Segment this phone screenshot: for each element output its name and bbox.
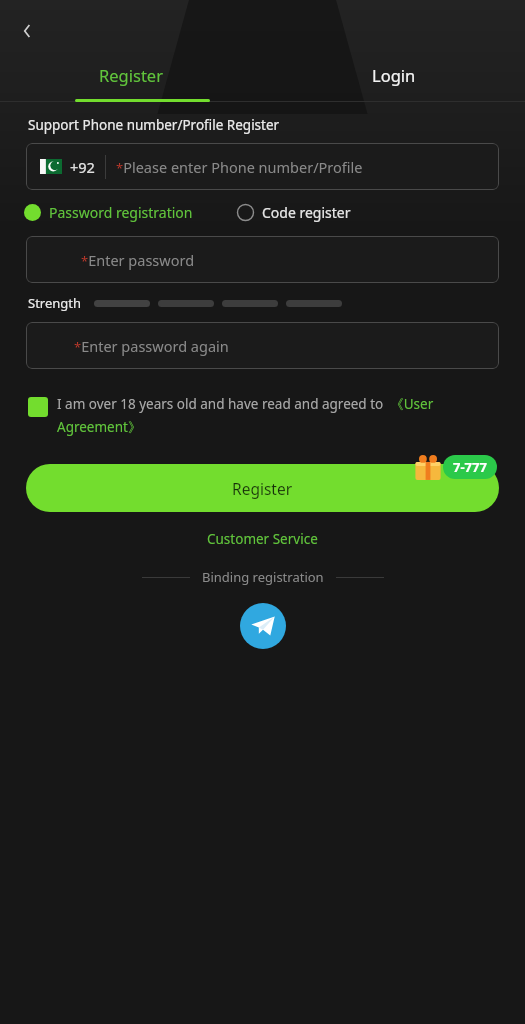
button[interactable]: Login — [262, 52, 525, 98]
button[interactable]: +92 — [26, 143, 499, 190]
staticText: Support Phone number/Profile Register — [28, 116, 280, 134]
staticText: Register — [232, 478, 293, 499]
button[interactable]: Back — [6, 10, 48, 52]
button[interactable]: Customer Service — [203, 526, 322, 552]
button[interactable]: Password registration — [24, 203, 193, 222]
button[interactable]: *Enter password again — [26, 322, 499, 369]
button[interactable]: Telegram — [240, 603, 286, 649]
staticText: Code register — [262, 203, 351, 222]
button[interactable]: Register — [0, 52, 262, 98]
staticText: Binding registration — [202, 568, 324, 586]
button[interactable]: *Enter password — [26, 236, 499, 283]
staticText: *Enter password again — [74, 336, 229, 356]
staticText: 7-777 — [453, 458, 487, 476]
button[interactable]: I am over 18 years old and have read and… — [28, 395, 465, 436]
staticText: Strength — [28, 294, 82, 312]
staticText: *Please enter Phone number/Profile — [116, 157, 363, 177]
button[interactable]: Register — [26, 464, 499, 512]
staticText: *Enter password — [81, 250, 195, 270]
staticText: Customer Service — [207, 530, 318, 548]
staticText: +92 — [70, 157, 95, 177]
staticText: Register — [99, 64, 163, 86]
button[interactable]: Code register — [237, 203, 351, 222]
staticText: I am over 18 years old and have read and… — [57, 395, 465, 436]
staticText: Password registration — [49, 203, 193, 222]
staticText: Login — [372, 64, 416, 86]
